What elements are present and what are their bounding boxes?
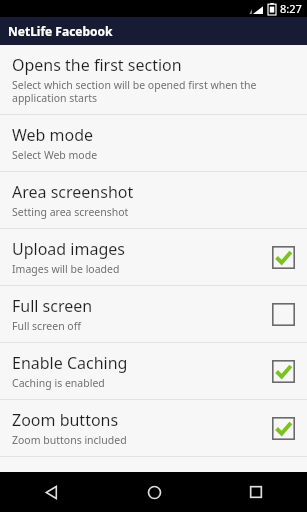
button[interactable]: Enable Caching (0, 343, 307, 399)
button[interactable]: Opens the first section (0, 45, 307, 114)
staticText: Select which section will be opened firs… (12, 78, 257, 105)
button[interactable]: Recent apps (205, 472, 307, 512)
staticText: Zoom buttons (12, 409, 119, 431)
staticText: Opens the first section (12, 54, 182, 76)
staticText: Setting area screenshot (12, 205, 129, 219)
button[interactable]: Back (0, 472, 103, 512)
staticText: Upload images (12, 238, 125, 260)
staticText: Enable Caching (12, 352, 128, 374)
button[interactable]: Web mode (0, 115, 307, 171)
staticText: NetLife Facebook (8, 23, 113, 39)
button[interactable]: Checked (272, 246, 295, 269)
staticText: Images will be loaded (12, 262, 120, 276)
button[interactable]: Unchecked (272, 303, 295, 326)
staticText: Select Web mode (12, 148, 98, 162)
staticText: Web mode (12, 124, 94, 146)
staticText: Area screenshot (12, 181, 134, 203)
button[interactable]: Checked (272, 417, 295, 440)
button[interactable]: Area screenshot (0, 172, 307, 228)
staticText: Caching is enabled (12, 376, 105, 390)
button[interactable]: Zoom buttons (0, 400, 307, 456)
staticText: Full screen off (12, 319, 81, 333)
staticText: 8:27 (280, 1, 302, 16)
staticText: Zoom buttons included (12, 433, 127, 447)
button[interactable]: Home (103, 472, 205, 512)
button[interactable]: Checked (272, 360, 295, 383)
button[interactable]: Upload images (0, 229, 307, 285)
button[interactable]: Full screen (0, 286, 307, 342)
staticText: Full screen (12, 295, 93, 317)
